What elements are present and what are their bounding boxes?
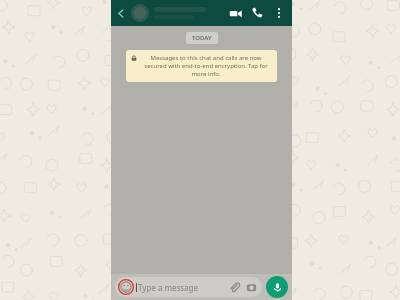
button[interactable]: Contact avatar <box>131 4 149 22</box>
button[interactable]: More options <box>268 2 290 24</box>
button[interactable]: Emoji <box>115 277 262 297</box>
button[interactable]: Back <box>111 3 131 23</box>
button[interactable]: TODAY <box>192 34 212 42</box>
button[interactable]: Emoji <box>118 279 134 295</box>
button[interactable] <box>154 7 224 19</box>
button[interactable]: Record voice message <box>266 276 288 298</box>
staticText: Messages to this chat and calls are now … <box>140 54 272 78</box>
button[interactable]: Camera <box>244 280 258 294</box>
staticText: Type a message <box>138 282 199 293</box>
button[interactable]: Voice call <box>246 2 268 24</box>
button[interactable]: Messages to this chat and calls are now … <box>126 50 277 82</box>
button[interactable]: Attach <box>227 280 241 294</box>
staticText: TODAY <box>192 34 212 42</box>
button[interactable]: Video call <box>224 2 246 24</box>
